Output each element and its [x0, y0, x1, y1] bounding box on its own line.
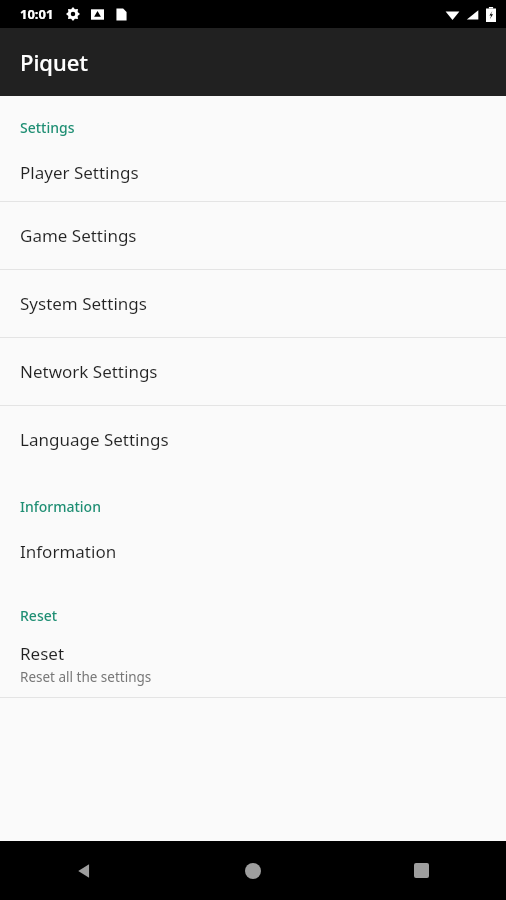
button[interactable]: Game Settings	[0, 202, 506, 269]
staticText: System Settings	[20, 292, 147, 315]
staticText: Language Settings	[20, 428, 169, 451]
staticText: Reset all the settings	[20, 668, 152, 686]
button[interactable]: Language Settings	[0, 406, 506, 473]
button[interactable]: Home	[168, 841, 337, 900]
staticText: Information	[20, 540, 117, 563]
staticText: Settings	[20, 118, 75, 137]
button[interactable]: Back	[0, 841, 168, 900]
staticText: Information	[20, 497, 101, 516]
button[interactable]: Player Settings	[0, 143, 506, 201]
button[interactable]: Network Settings	[0, 338, 506, 405]
staticText: Reset	[20, 642, 65, 665]
staticText: Piquet	[20, 47, 88, 77]
staticText: Reset	[20, 606, 58, 625]
staticText: 10:01	[20, 5, 54, 23]
button[interactable]: System Settings	[0, 270, 506, 337]
button[interactable]: Reset	[0, 631, 506, 697]
staticText: Network Settings	[20, 360, 158, 383]
button[interactable]: Information	[0, 522, 506, 580]
staticText: Player Settings	[20, 161, 139, 184]
button[interactable]: Recent apps	[337, 841, 506, 900]
staticText: Game Settings	[20, 224, 137, 247]
